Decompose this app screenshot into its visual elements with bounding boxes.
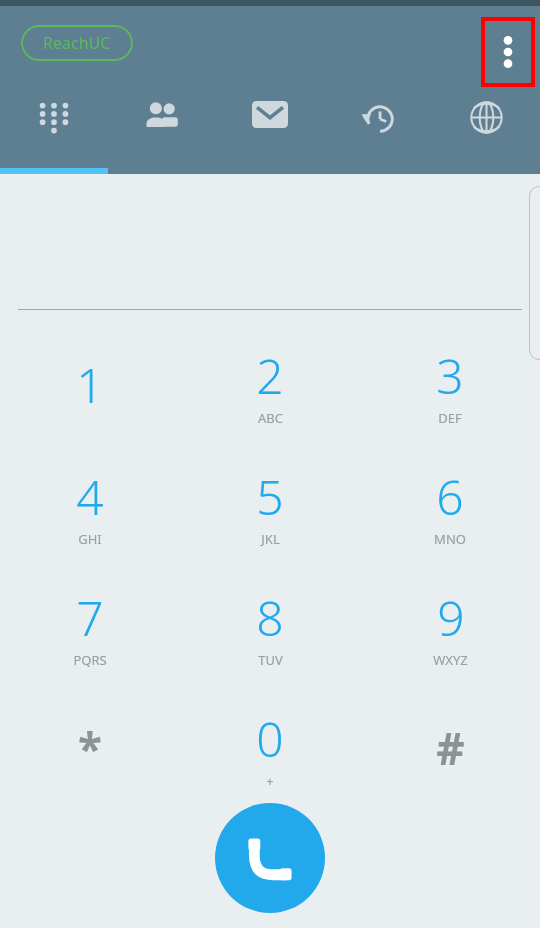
staticText: ReachUC: [43, 32, 111, 54]
button[interactable]: 4: [0, 445, 180, 566]
button[interactable]: 0: [180, 687, 360, 808]
staticText: TUV: [258, 651, 283, 669]
staticText: 1: [76, 352, 104, 417]
staticText: DEF: [438, 409, 462, 427]
button[interactable]: 8: [180, 566, 360, 687]
staticText: 6: [436, 464, 464, 529]
staticText: 3: [436, 343, 464, 408]
staticText: 0: [256, 706, 284, 771]
button[interactable]: ReachUC: [21, 25, 133, 61]
staticText: PQRS: [73, 651, 107, 669]
button[interactable]: Messages: [216, 101, 324, 128]
staticText: #: [436, 718, 465, 778]
staticText: 2: [256, 343, 284, 408]
button[interactable]: 6: [360, 445, 540, 566]
button[interactable]: Contacts: [108, 101, 216, 129]
staticText: 5: [256, 464, 284, 529]
button[interactable]: 2: [180, 324, 360, 445]
button[interactable]: Recents: [324, 101, 432, 135]
staticText: MNO: [434, 530, 466, 548]
button[interactable]: Web: [432, 101, 540, 134]
button[interactable]: 9: [360, 566, 540, 687]
staticText: +: [266, 772, 274, 790]
staticText: 7: [76, 585, 104, 650]
button[interactable]: Call: [215, 803, 325, 913]
button[interactable]: *: [0, 687, 180, 808]
staticText: 4: [76, 464, 104, 529]
staticText: 9: [437, 585, 465, 650]
button[interactable]: More options: [481, 17, 535, 87]
staticText: 8: [256, 585, 284, 650]
button[interactable]: Dialpad: [0, 101, 108, 135]
staticText: JKL: [261, 530, 280, 548]
button[interactable]: 1: [0, 324, 180, 445]
button[interactable]: 5: [180, 445, 360, 566]
button[interactable]: 3: [360, 324, 540, 445]
staticText: ABC: [258, 409, 283, 427]
button[interactable]: #: [360, 687, 540, 808]
staticText: GHI: [78, 530, 102, 548]
staticText: *: [78, 718, 102, 778]
staticText: WXYZ: [433, 651, 468, 669]
button[interactable]: 7: [0, 566, 180, 687]
